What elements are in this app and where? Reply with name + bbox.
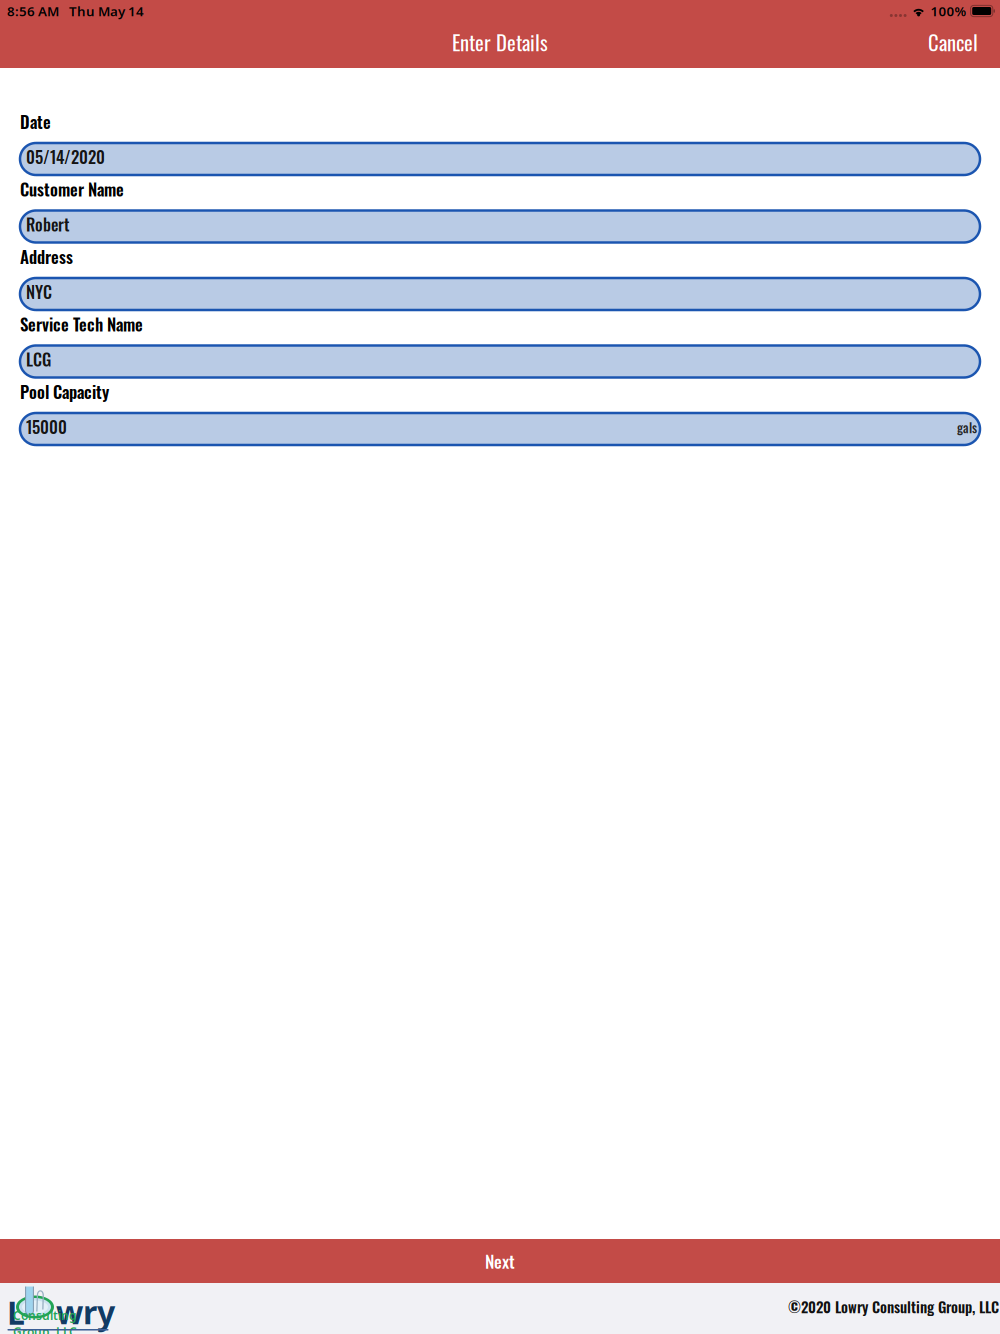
staticText: L xyxy=(7,1290,25,1334)
staticText: Address xyxy=(20,244,73,269)
staticText: Robert xyxy=(26,212,70,236)
staticText: Consulting Group, LLC xyxy=(13,1307,77,1334)
staticText: wry xyxy=(56,1290,115,1334)
staticText: Date xyxy=(20,109,51,134)
button[interactable]: Next xyxy=(0,1239,1000,1283)
staticText: gals xyxy=(957,418,977,437)
button[interactable]: NYC xyxy=(20,278,980,310)
staticText: Customer Name xyxy=(20,176,124,201)
button[interactable]: LCG xyxy=(20,345,980,377)
button[interactable]: 15000 xyxy=(20,413,980,445)
staticText: Thu May 14 xyxy=(69,2,144,20)
staticText: ©2020 Lowry Consulting Group, LLC xyxy=(788,1296,999,1317)
staticText: Cancel xyxy=(928,27,978,57)
staticText: Service Tech Name xyxy=(20,311,143,336)
button[interactable]: Robert xyxy=(20,210,980,242)
staticText: 100% xyxy=(931,2,967,20)
staticText: Pool Capacity xyxy=(20,379,109,404)
staticText: 15000 xyxy=(26,414,67,439)
staticText: Enter Details xyxy=(452,27,548,57)
staticText: LCG xyxy=(26,347,51,371)
button[interactable]: Cancel xyxy=(920,24,986,66)
button[interactable]: 05/14/2020 xyxy=(20,143,980,175)
staticText: Next xyxy=(485,1248,515,1274)
staticText: 8:56 AM xyxy=(7,2,59,20)
staticText: 05/14/2020 xyxy=(26,144,105,169)
staticText: NYC xyxy=(26,279,52,304)
